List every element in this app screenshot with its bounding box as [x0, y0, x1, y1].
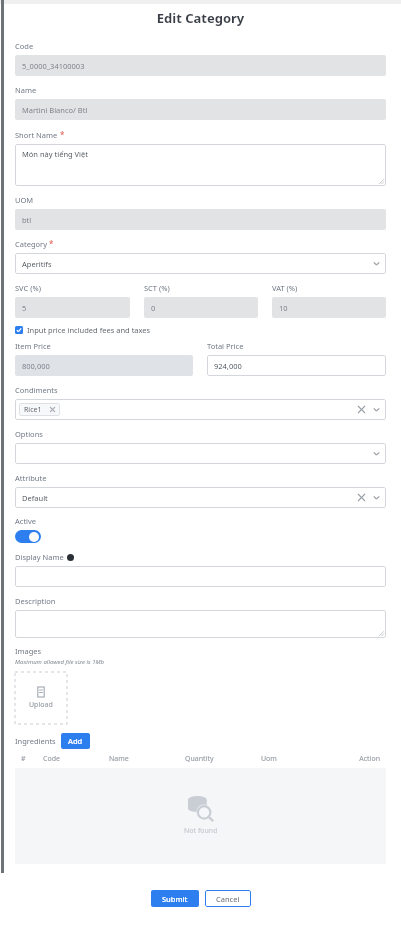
staticText: Rice1 — [24, 405, 42, 415]
staticText: Total Price — [207, 341, 244, 351]
staticText: Images — [15, 646, 42, 656]
button[interactable]: 800,000 — [15, 355, 193, 376]
staticText: Maximum allowed file size is 1Mb — [15, 658, 105, 666]
staticText: Item Price — [15, 341, 51, 351]
button[interactable]: Martini Bianco/ Btl — [15, 99, 386, 120]
staticText: Name — [15, 85, 37, 95]
staticText: Attribute — [15, 473, 47, 483]
staticText: Quantity — [185, 754, 261, 764]
staticText: Default — [22, 493, 48, 503]
staticText: Category — [15, 239, 47, 249]
button[interactable] — [15, 443, 386, 464]
button[interactable]: Rice1 — [15, 399, 386, 420]
staticText: Display Name — [15, 552, 64, 562]
staticText: Ingredients — [15, 736, 56, 746]
button[interactable]: Món này tiếng Việt — [15, 144, 386, 186]
staticText: 5_0000_34100003 — [22, 61, 85, 71]
staticText: Condiments — [15, 385, 58, 395]
button[interactable]: Active toggle — [15, 530, 41, 543]
staticText: SCT (%) — [144, 283, 170, 293]
staticText: Martini Bianco/ Btl — [22, 105, 88, 115]
button[interactable]: Submit — [151, 890, 199, 907]
button[interactable]: 10 — [272, 297, 386, 318]
staticText: Name — [109, 754, 185, 764]
button[interactable]: 0 — [144, 297, 258, 318]
staticText: Upload — [29, 700, 53, 710]
button[interactable] — [15, 566, 386, 587]
button[interactable]: 5 — [15, 297, 130, 318]
button[interactable]: Aperitifs — [15, 253, 386, 274]
button[interactable]: 5_0000_34100003 — [15, 55, 386, 76]
staticText: 924,000 — [214, 361, 242, 371]
staticText: * — [60, 129, 65, 140]
staticText: # — [21, 754, 43, 764]
staticText: VAT (%) — [272, 283, 298, 293]
staticText: Active — [15, 516, 37, 526]
staticText: Cancel — [216, 894, 240, 904]
staticText: Add — [68, 736, 83, 746]
button[interactable]: 924,000 — [207, 355, 386, 376]
staticText: Aperitifs — [22, 259, 52, 269]
staticText: 10 — [279, 303, 288, 313]
staticText: Action — [330, 754, 380, 764]
staticText: Code — [43, 754, 109, 764]
staticText: Input price included fees and taxes — [27, 325, 151, 335]
button[interactable]: Cancel — [205, 890, 251, 907]
staticText: Code — [15, 41, 34, 51]
staticText: Not found — [184, 826, 218, 836]
staticText: Description — [15, 596, 56, 606]
button[interactable]: Default — [15, 487, 386, 508]
button[interactable]: Input price included fees and taxes — [15, 325, 151, 335]
staticText: SVC (%) — [15, 283, 41, 293]
staticText: Submit — [162, 894, 188, 904]
staticText: 0 — [151, 303, 156, 313]
staticText: btl — [22, 215, 32, 225]
staticText: Món này tiếng Việt — [22, 149, 88, 159]
button[interactable] — [15, 610, 386, 638]
staticText: Uom — [261, 754, 330, 764]
staticText: * — [49, 238, 54, 249]
staticText: 5 — [22, 303, 27, 313]
button[interactable]: Upload image — [15, 672, 67, 724]
staticText: Options — [15, 429, 43, 439]
staticText: Edit Category — [15, 9, 386, 27]
staticText: UOM — [15, 195, 34, 205]
staticText: Short Name — [15, 130, 58, 140]
button[interactable]: Add — [61, 733, 90, 749]
button[interactable]: btl — [15, 209, 386, 230]
staticText: 800,000 — [22, 361, 50, 371]
